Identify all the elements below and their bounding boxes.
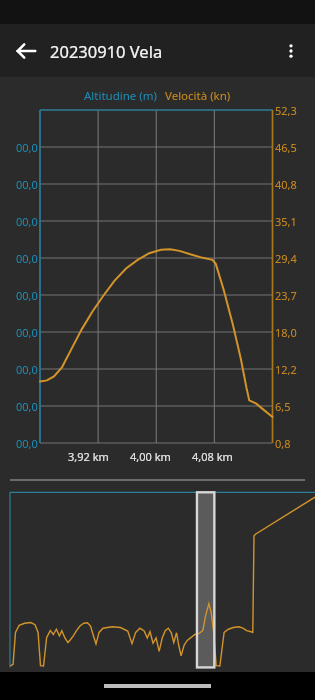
staticText: 18,0 — [275, 325, 297, 340]
staticText: 00,0 — [16, 399, 38, 414]
staticText: 00,0 — [16, 214, 38, 229]
staticText: 0,8 — [275, 436, 291, 451]
staticText: 3,92 km — [68, 449, 109, 464]
button[interactable]: Back — [5, 30, 47, 72]
staticText: 52,3 — [275, 103, 297, 118]
staticText: Velocità (kn) — [165, 88, 231, 104]
button[interactable]: Altitudine (m) — [84, 88, 157, 104]
staticText: 23,7 — [275, 288, 297, 303]
staticText: 00,0 — [16, 140, 38, 155]
staticText: 29,4 — [275, 251, 297, 266]
staticText: 00,0 — [16, 325, 38, 340]
staticText: 46,5 — [275, 140, 297, 155]
staticText: 35,1 — [275, 214, 297, 229]
staticText: Altitudine (m) — [84, 88, 157, 104]
staticText: 00,0 — [16, 436, 38, 451]
staticText: 4,00 km — [130, 449, 171, 464]
button[interactable] — [0, 489, 315, 672]
staticText: 00,0 — [16, 288, 38, 303]
staticText: 12,2 — [275, 362, 297, 377]
staticText: 00,0 — [16, 177, 38, 192]
staticText: 4,08 km — [192, 449, 233, 464]
button[interactable]: More options — [270, 30, 312, 72]
staticText: 20230910 Vela — [50, 40, 163, 62]
staticText: 6,5 — [275, 399, 291, 414]
button[interactable]: Velocità (kn) — [165, 88, 231, 104]
staticText: 40,8 — [275, 177, 297, 192]
staticText: 00,0 — [16, 251, 38, 266]
staticText: 00,0 — [16, 362, 38, 377]
